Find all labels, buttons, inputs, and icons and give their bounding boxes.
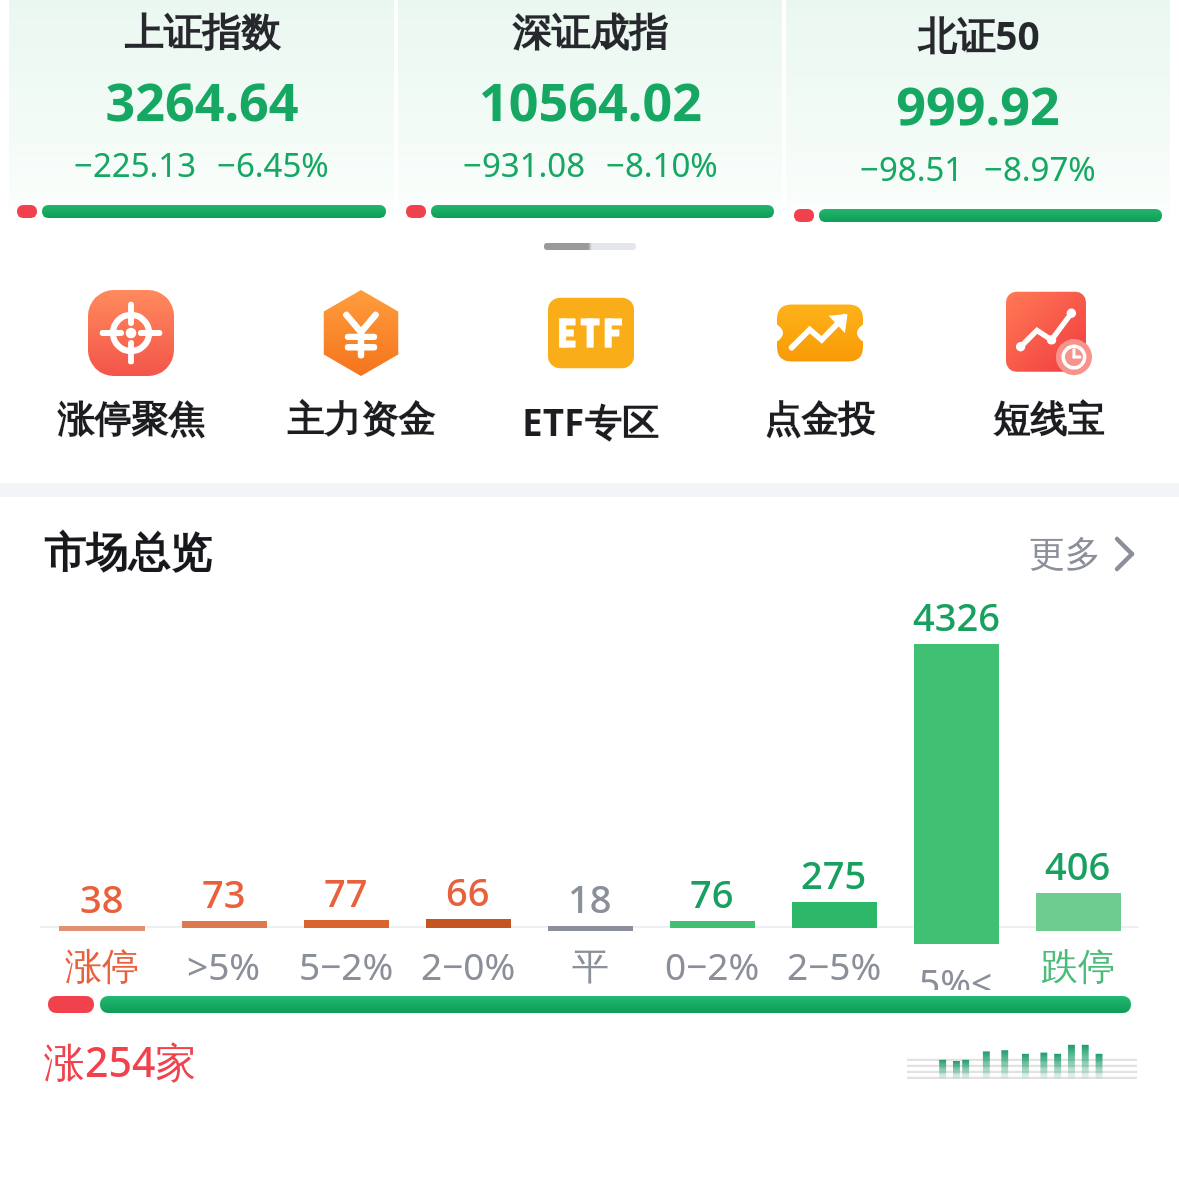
staticText: 涨254家 (44, 1033, 197, 1089)
staticText: −98.51 (860, 146, 964, 191)
staticText: 2−0% (421, 940, 516, 990)
staticText: 10564.02 (479, 65, 702, 136)
button[interactable]: 18 (529, 872, 651, 990)
staticText: 市场总览 (44, 527, 212, 580)
staticText: 5−2% (299, 940, 394, 990)
staticText: 上证指数 (124, 8, 280, 57)
staticText: 涨停 (65, 943, 139, 990)
button[interactable]: 上证指数 (9, 0, 394, 224)
staticText: −6.45% (217, 142, 329, 187)
staticText: 2−5% (787, 940, 882, 990)
staticText: 北证50 (917, 8, 1040, 61)
staticText: 77 (324, 866, 368, 918)
staticText: 999.92 (896, 69, 1060, 140)
button[interactable]: 275 (773, 848, 895, 990)
staticText: 短线宝 (993, 396, 1104, 443)
staticText: 3264.64 (105, 65, 299, 136)
button[interactable]: 406 (1017, 839, 1139, 990)
staticText: 406 (1045, 839, 1111, 891)
staticText: 18 (568, 872, 612, 924)
button[interactable]: ETF专区 (476, 288, 705, 449)
button[interactable]: 市场总览 (0, 527, 1179, 580)
staticText: 38 (80, 872, 124, 924)
staticText: 涨停聚焦 (57, 396, 205, 443)
staticText: 更多 (1029, 531, 1101, 576)
staticText: −931.08 (463, 142, 586, 187)
button[interactable]: 北证50 (786, 0, 1170, 228)
staticText: 平 (572, 943, 609, 990)
staticText: 66 (446, 865, 490, 917)
staticText: 73 (202, 867, 246, 919)
button[interactable]: 短线宝 (934, 288, 1163, 445)
button[interactable]: 77 (285, 866, 407, 990)
staticText: 5%< (919, 956, 993, 990)
staticText: 深证成指 (512, 8, 668, 57)
button[interactable]: 73 (163, 867, 285, 990)
staticText: 0−2% (665, 940, 760, 990)
staticText: −8.10% (606, 142, 718, 187)
button[interactable]: 主力资金 (246, 288, 476, 445)
staticText: >5% (187, 940, 261, 990)
staticText: 275 (801, 848, 867, 900)
staticText: 76 (690, 867, 734, 919)
button[interactable]: 4326 (895, 590, 1017, 990)
staticText: −8.97% (984, 146, 1096, 191)
button[interactable]: 深证成指 (398, 0, 782, 224)
button[interactable]: 76 (651, 867, 773, 990)
staticText: 4326 (913, 590, 1000, 642)
button[interactable]: 38 (40, 872, 163, 990)
staticText: 点金投 (764, 396, 875, 443)
button[interactable]: 点金投 (705, 288, 934, 445)
staticText: −225.13 (74, 142, 197, 187)
staticText: 跌停 (1041, 943, 1115, 990)
button[interactable]: 66 (407, 865, 529, 990)
button[interactable]: 涨停聚焦 (16, 288, 246, 445)
staticText: 主力资金 (287, 396, 435, 443)
staticText: ETF专区 (522, 396, 659, 447)
